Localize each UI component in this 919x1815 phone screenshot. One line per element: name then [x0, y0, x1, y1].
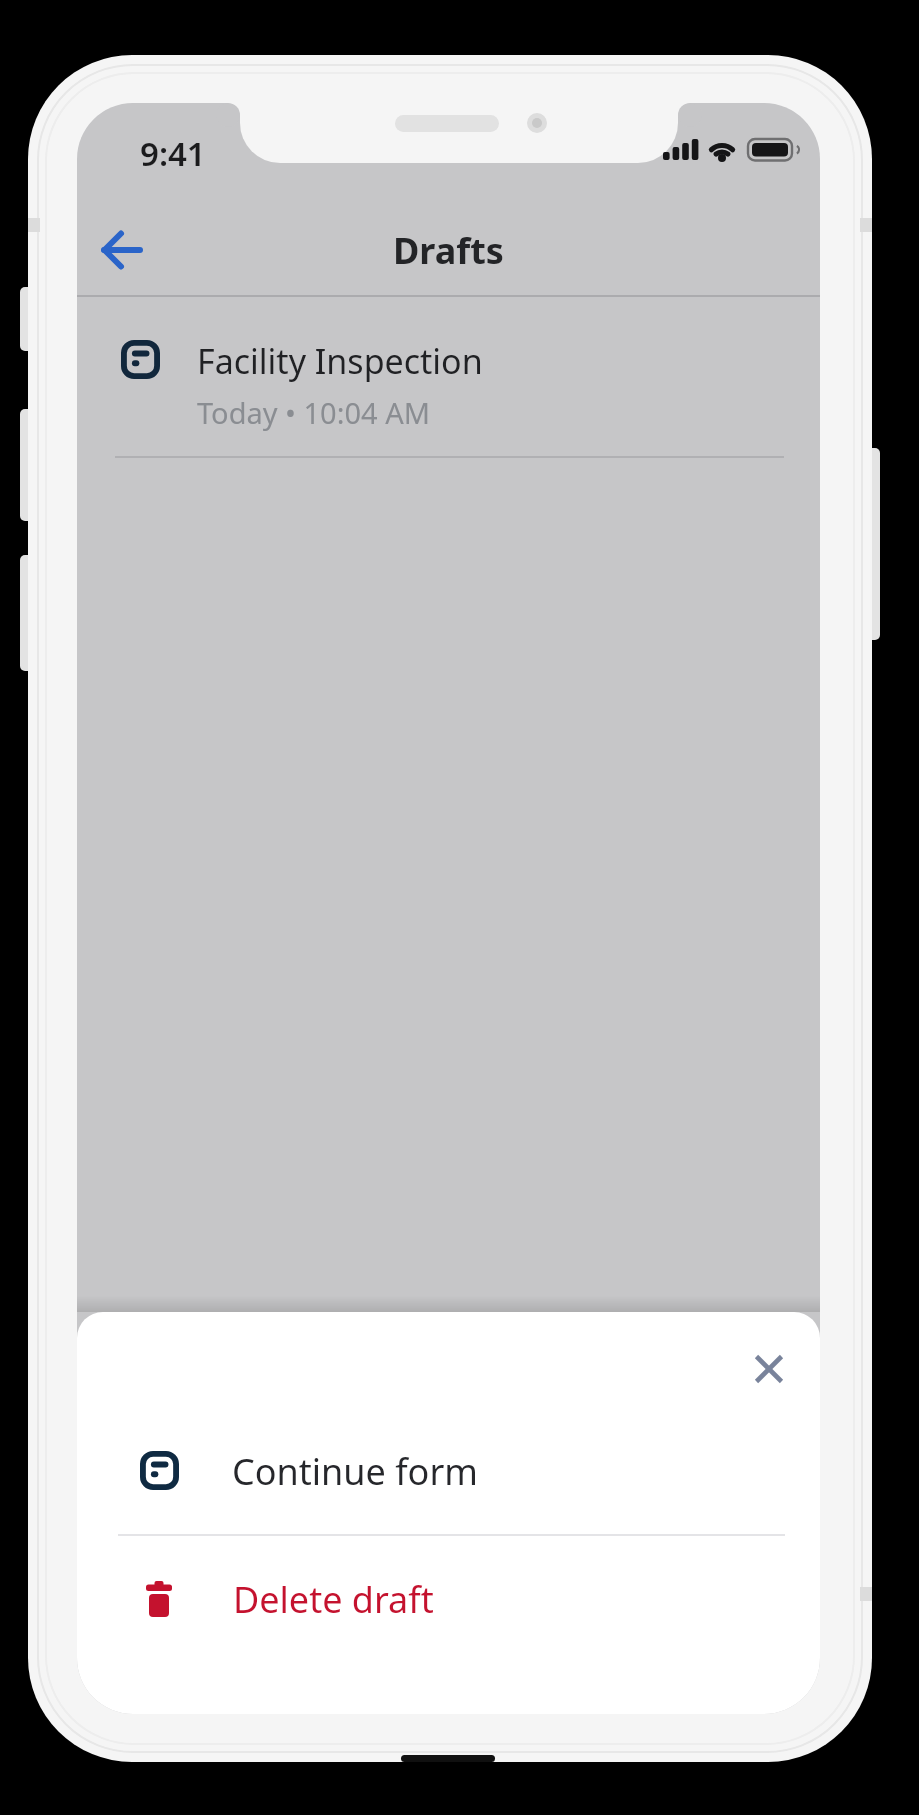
button[interactable]: [741, 1341, 797, 1397]
staticText: Facility Inspection: [197, 338, 483, 384]
button[interactable]: Continue form: [77, 1421, 820, 1521]
staticText: 9:41: [140, 131, 206, 171]
button[interactable]: [95, 223, 149, 277]
staticText: Delete draft: [233, 1575, 434, 1624]
staticText: Drafts: [393, 226, 504, 275]
staticText: Continue form: [232, 1447, 478, 1496]
button[interactable]: Facility Inspection: [77, 303, 820, 457]
button[interactable]: Delete draft: [77, 1549, 820, 1649]
staticText: Today • 10:04 AM: [197, 393, 431, 432]
